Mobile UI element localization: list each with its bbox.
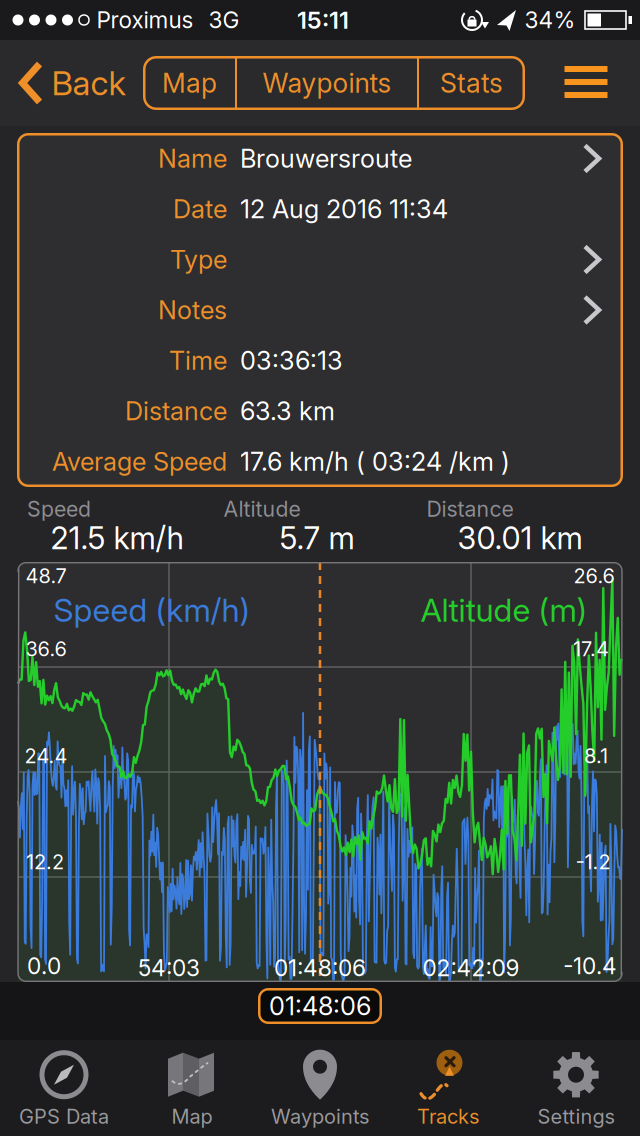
staticText: Map bbox=[162, 67, 217, 99]
staticText: 8.1 bbox=[584, 744, 608, 768]
staticText: Tracks bbox=[417, 1105, 479, 1128]
staticText: Waypoints bbox=[271, 1105, 369, 1128]
staticText: 17.4 bbox=[573, 637, 609, 661]
staticText: 54:03 bbox=[138, 955, 200, 981]
staticText: 21.5 km/h bbox=[50, 520, 183, 556]
button[interactable]: Tracks bbox=[384, 1042, 512, 1134]
staticText: Settings bbox=[537, 1105, 614, 1128]
button[interactable]: 01:48:06 bbox=[258, 988, 382, 1024]
staticText: 24.4 bbox=[24, 744, 67, 768]
staticText: Waypoints bbox=[262, 67, 391, 99]
button[interactable]: Notes bbox=[17, 285, 623, 335]
staticText: Brouwersroute bbox=[240, 144, 412, 173]
staticText: Distance bbox=[426, 496, 513, 522]
staticText: 02:42:09 bbox=[422, 955, 519, 981]
staticText: Speed (km/h) bbox=[53, 591, 250, 629]
staticText: 12 Aug 2016 11:34 bbox=[240, 194, 448, 224]
staticText: 26.6 bbox=[573, 564, 614, 588]
staticText: Proximus bbox=[96, 7, 193, 33]
staticText: 63.3 km bbox=[240, 396, 335, 426]
staticText: GPS Data bbox=[19, 1105, 109, 1128]
staticText: 5.7 m bbox=[279, 520, 354, 556]
staticText: 3G bbox=[208, 7, 239, 33]
staticText: 17.6 km/h ( 03:24 /km ) bbox=[240, 447, 510, 476]
staticText: 12.2 bbox=[26, 850, 64, 874]
button[interactable]: Stats bbox=[418, 56, 525, 110]
button[interactable]: GPS Data bbox=[0, 1042, 128, 1134]
staticText: Average Speed bbox=[52, 447, 227, 476]
staticText: 48.7 bbox=[25, 564, 66, 588]
staticText: Altitude bbox=[223, 496, 300, 522]
staticText: Time bbox=[169, 346, 227, 375]
staticText: Date bbox=[173, 194, 227, 224]
staticText: 01:48:06 bbox=[269, 991, 371, 1021]
staticText: Map bbox=[171, 1105, 212, 1128]
staticText: 30.01 km bbox=[457, 520, 582, 556]
staticText: Altitude (m) bbox=[420, 591, 587, 629]
button[interactable]: Type bbox=[17, 234, 623, 285]
staticText: 0.0 bbox=[27, 953, 61, 979]
staticText: -1.2 bbox=[575, 850, 610, 874]
button[interactable]: Waypoints bbox=[236, 56, 418, 110]
staticText: 03:36:13 bbox=[240, 346, 343, 375]
staticText: 34% bbox=[524, 7, 575, 33]
button[interactable]: Back bbox=[12, 53, 132, 113]
staticText: Speed bbox=[27, 496, 91, 522]
staticText: Stats bbox=[440, 67, 503, 99]
button[interactable]: Map bbox=[143, 56, 236, 110]
staticText: Type bbox=[170, 245, 227, 274]
button[interactable]: Waypoints bbox=[256, 1042, 384, 1134]
staticText: Name bbox=[158, 144, 227, 173]
button[interactable]: Settings bbox=[512, 1042, 640, 1134]
staticText: Notes bbox=[158, 295, 227, 325]
staticText: Back bbox=[51, 63, 125, 103]
staticText: -10.4 bbox=[563, 953, 617, 979]
staticText: 36.6 bbox=[25, 637, 66, 661]
button[interactable]: Menu bbox=[564, 64, 607, 100]
staticText: 15:11 bbox=[297, 6, 349, 34]
staticText: 01:48:06 bbox=[274, 955, 366, 981]
staticText: Distance bbox=[125, 396, 227, 426]
button[interactable]: Name bbox=[17, 133, 623, 184]
button[interactable]: Map bbox=[128, 1042, 256, 1134]
